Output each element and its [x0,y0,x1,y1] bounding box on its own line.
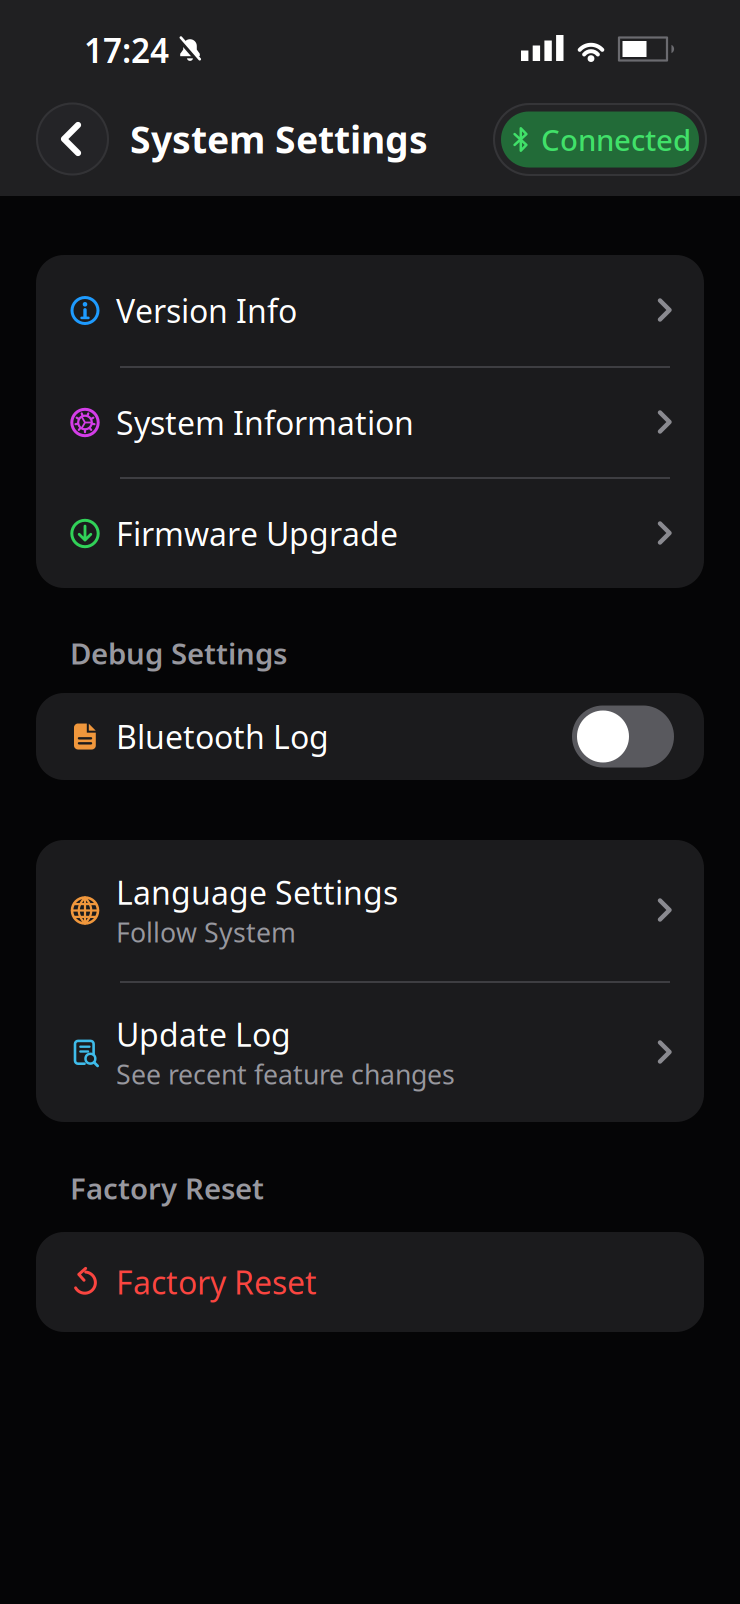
staticText: Debug Settings [70,633,287,672]
staticText: Firmware Upgrade [116,512,398,555]
staticText: See recent feature changes [116,1056,455,1092]
staticText: System Information [116,401,414,444]
button[interactable]: Bluetooth Log [572,705,674,767]
staticText: 17:24 [84,28,169,72]
button[interactable]: Update Log [36,983,704,1122]
staticText: Update Log [116,1013,291,1055]
button[interactable]: Bluetooth Log [36,693,704,780]
staticText: Bluetooth Log [116,715,329,758]
button[interactable]: Connected [493,103,707,176]
staticText: System Settings [130,114,428,164]
staticText: Factory Reset [116,1261,317,1303]
staticText: Version Info [116,289,297,332]
button[interactable]: Factory Reset [36,1232,704,1332]
staticText: Factory Reset [70,1168,264,1207]
button[interactable]: Language Settings [36,840,704,981]
button[interactable]: System Information [36,368,704,477]
staticText: Connected [541,120,691,159]
button[interactable]: Version Info [36,255,704,366]
staticText: Follow System [116,914,296,950]
button[interactable]: Back [36,102,109,175]
staticText: Language Settings [116,871,398,913]
button[interactable]: Firmware Upgrade [36,479,704,588]
